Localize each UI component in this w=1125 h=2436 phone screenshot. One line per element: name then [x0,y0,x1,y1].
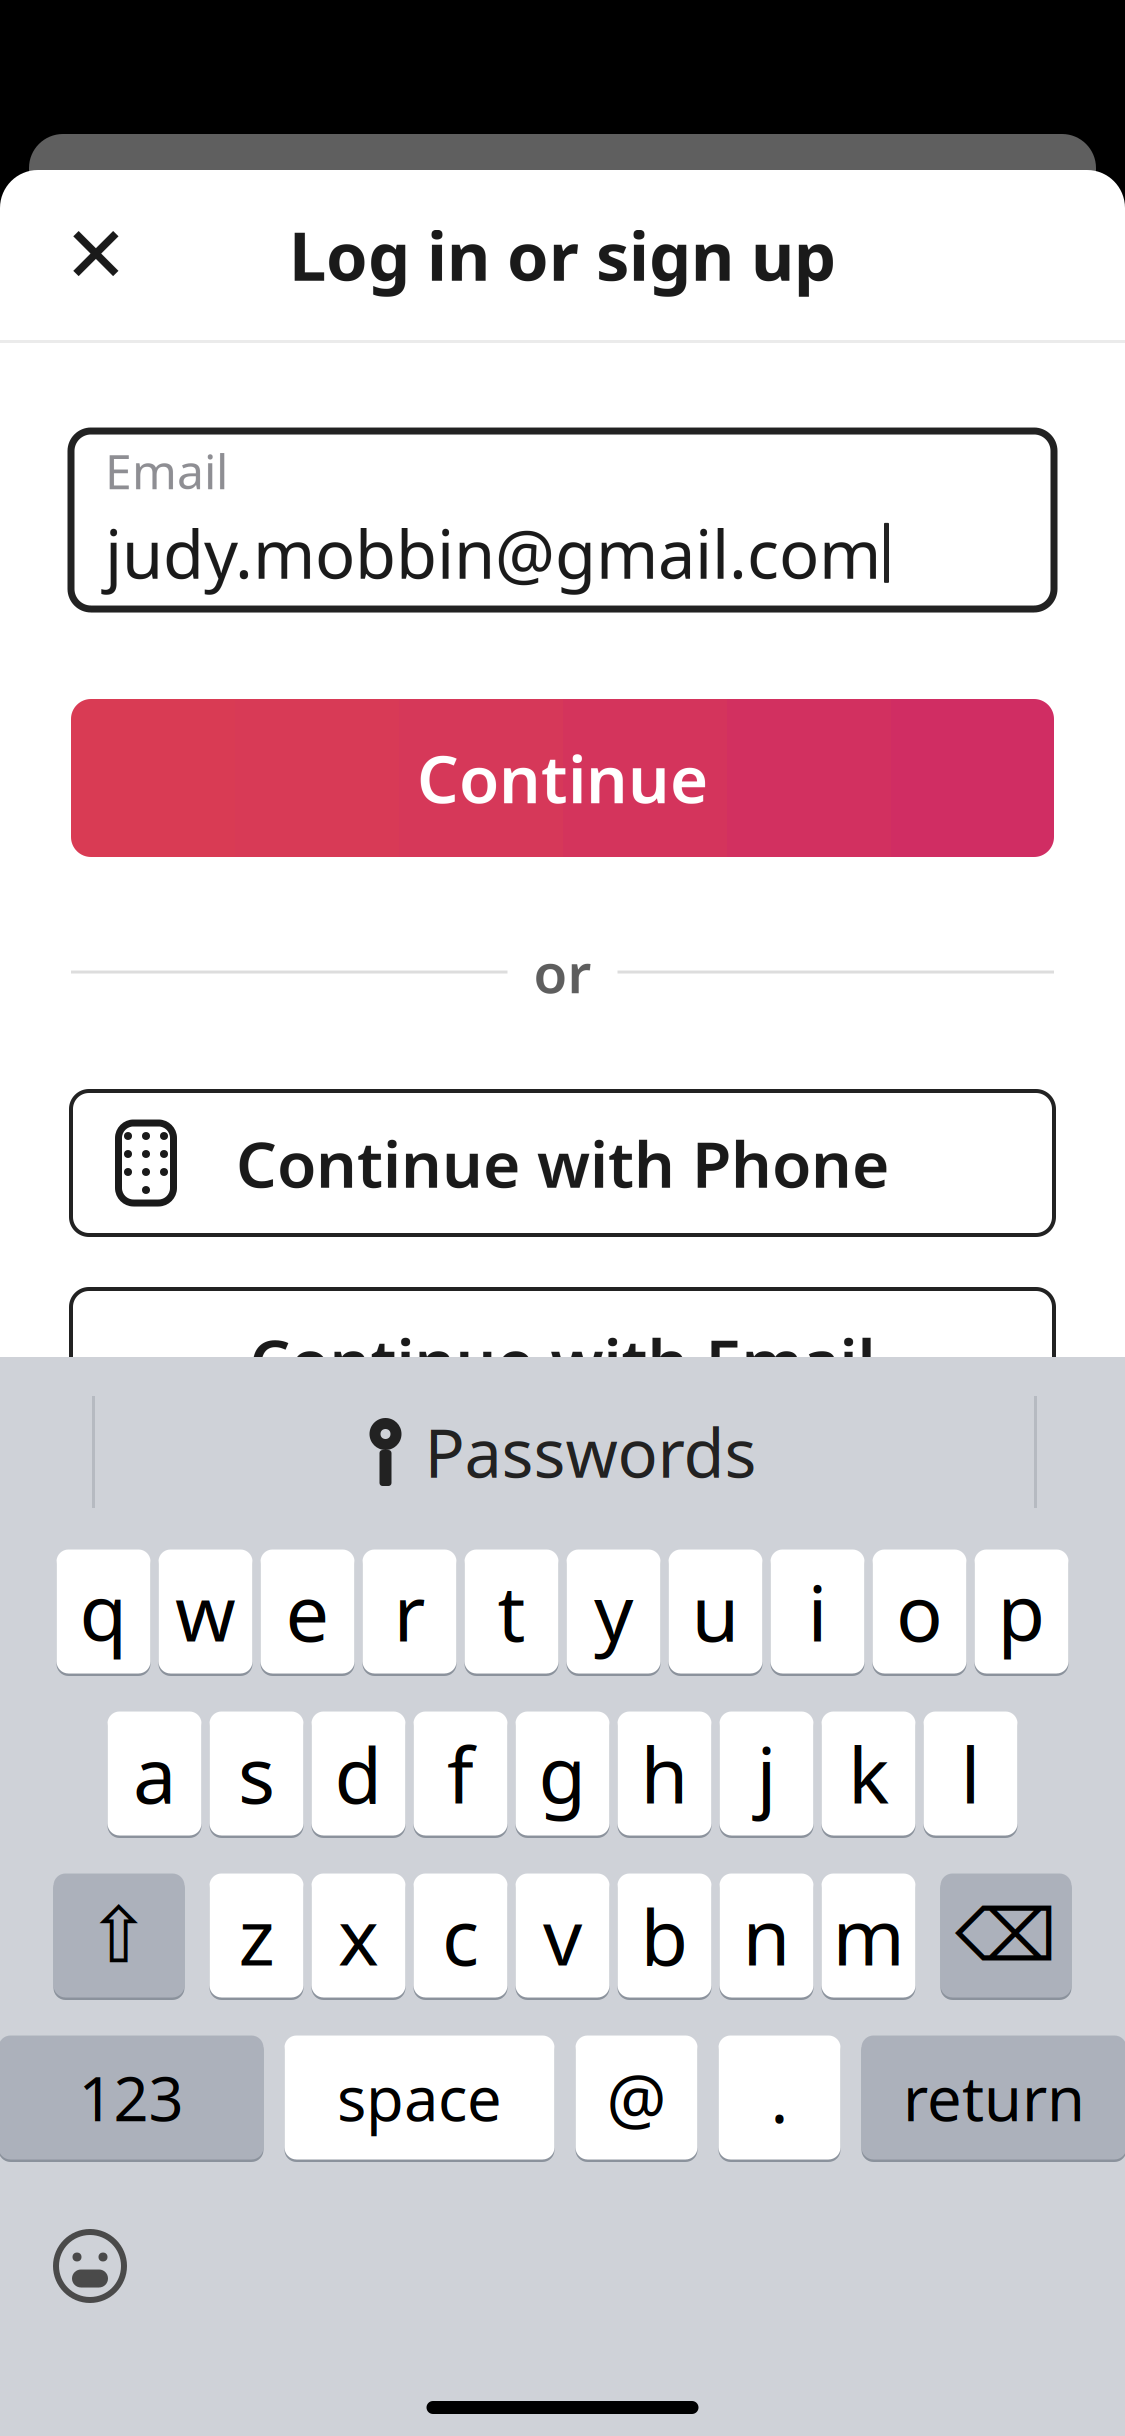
button[interactable]: space [284,2033,554,2162]
staticText: Log in or sign up [289,211,836,299]
staticText: m [832,1884,904,1987]
staticText: y [594,1560,633,1663]
button[interactable]: p [974,1547,1068,1676]
staticText: g [538,1722,586,1825]
button[interactable]: v [515,1871,609,2000]
button[interactable]: Return [861,2033,1125,2162]
staticText: n [742,1884,790,1987]
staticText: f [447,1722,474,1825]
staticText: l [960,1722,980,1825]
staticText: d [334,1722,382,1825]
staticText: Continue [417,735,708,821]
staticText: c [442,1884,479,1987]
button[interactable]: Delete [940,1871,1071,2000]
button[interactable]: z [209,1871,303,2000]
button[interactable]: Shift [53,1871,184,2000]
staticText: Email [105,439,228,503]
button[interactable]: Continue with Email [71,1289,1054,1433]
staticText: a [133,1722,176,1825]
button[interactable]: . [718,2033,840,2162]
button[interactable]: s [209,1709,303,1838]
button[interactable]: Emoji keyboard [40,2216,140,2316]
button[interactable]: x [311,1871,405,2000]
button[interactable]: i [770,1547,864,1676]
staticText: Continue with Email [249,1318,875,1403]
button[interactable]: l [923,1709,1017,1838]
staticText: p [997,1560,1045,1663]
staticText: t [497,1560,525,1663]
button[interactable]: b [617,1871,711,2000]
button[interactable]: a [107,1709,201,1838]
button[interactable]: Numbers [0,2033,263,2162]
button[interactable]: q [56,1547,150,1676]
button[interactable]: Continue [71,699,1054,857]
button[interactable]: Email [71,431,1054,609]
staticText: Passwords [424,1408,756,1496]
button[interactable]: e [260,1547,354,1676]
staticText: r [393,1560,425,1663]
staticText: v [543,1884,582,1987]
staticText: q [79,1560,127,1663]
button[interactable]: r [362,1547,456,1676]
button[interactable]: g [515,1709,609,1838]
button[interactable]: Passwords [338,1394,786,1510]
staticText: u [691,1560,739,1663]
button[interactable]: j [719,1709,813,1838]
button[interactable]: d [311,1709,405,1838]
staticText: h [640,1722,688,1825]
staticText: judy.mobbin@gmail.com [105,509,881,597]
button[interactable]: t [464,1547,558,1676]
staticText: ✕ [63,211,128,299]
button[interactable]: Continue with Phone [71,1091,1054,1235]
staticText: z [238,1884,274,1987]
button[interactable]: c [413,1871,507,2000]
staticText: k [848,1722,889,1825]
staticText: return [903,2057,1085,2138]
button[interactable]: @ [575,2033,697,2162]
staticText: . [770,2053,788,2142]
staticText: i [807,1560,827,1663]
staticText: @ [606,2053,666,2142]
staticText: o [896,1560,943,1663]
staticText: j [756,1722,776,1825]
staticText: s [238,1722,275,1825]
staticText: ⌫ [955,1895,1057,1976]
button[interactable]: k [821,1709,915,1838]
staticText: w [175,1560,236,1663]
button[interactable]: n [719,1871,813,2000]
staticText: or [533,936,591,1008]
button[interactable]: Close [46,205,146,305]
staticText: ⇧ [86,1892,151,1979]
button[interactable]: y [566,1547,660,1676]
button[interactable]: w [158,1547,252,1676]
button[interactable]: f [413,1709,507,1838]
button[interactable]: h [617,1709,711,1838]
staticText: Continue with Phone [236,1120,889,1205]
button[interactable]: o [872,1547,966,1676]
staticText: 123 [78,2057,183,2138]
staticText: b [640,1884,688,1987]
staticText: space [337,2057,502,2138]
staticText: e [285,1560,329,1663]
button[interactable]: m [821,1871,915,2000]
staticText: x [338,1884,379,1987]
button[interactable]: u [668,1547,762,1676]
